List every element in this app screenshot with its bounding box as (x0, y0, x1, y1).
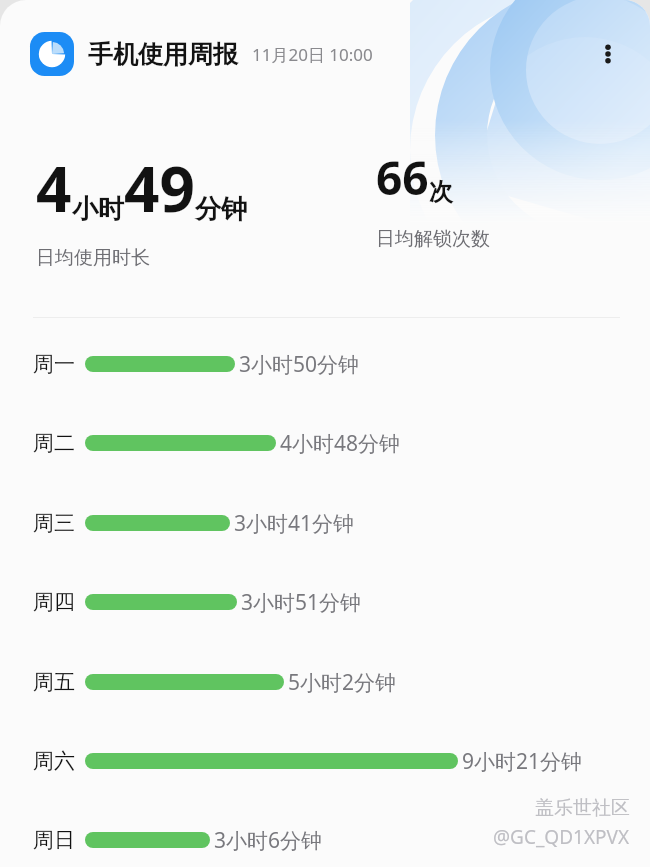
staticText: 5小时2分钟 (288, 668, 397, 697)
staticText: 3小时6分钟 (214, 826, 323, 855)
staticText: 11月20日 10:00 (252, 43, 373, 66)
button[interactable]: 周一 (0, 338, 650, 390)
staticText: 9小时21分钟 (462, 747, 583, 776)
staticText: 周六 (33, 748, 75, 774)
button[interactable]: 周日 (0, 814, 650, 866)
staticText: 4 (36, 146, 72, 230)
staticText: 次 (429, 177, 453, 207)
staticText: 周五 (33, 669, 75, 695)
staticText: 3小时41分钟 (234, 509, 355, 538)
button[interactable]: 周二 (0, 417, 650, 469)
staticText: 手机使用周报 (88, 39, 238, 70)
staticText: 日均解锁次数 (376, 227, 490, 251)
staticText: @GC_QD1XPVX (493, 824, 630, 850)
staticText: 周日 (33, 827, 75, 853)
button[interactable]: 周三 (0, 497, 650, 549)
button[interactable]: 周六 (0, 735, 650, 787)
staticText: 盖乐世社区 (535, 796, 630, 820)
staticText: 4小时48分钟 (280, 429, 401, 458)
staticText: 周四 (33, 589, 75, 615)
staticText: 周三 (33, 510, 75, 536)
button[interactable]: 周四 (0, 576, 650, 628)
staticText: 日均使用时长 (36, 246, 150, 270)
button[interactable]: More options (586, 32, 630, 76)
staticText: 3小时50分钟 (239, 350, 360, 379)
staticText: 66 (376, 146, 429, 209)
button[interactable]: 周五 (0, 656, 650, 708)
staticText: 小时 (72, 193, 124, 226)
staticText: 49 (124, 146, 195, 230)
staticText: 分钟 (195, 193, 247, 226)
staticText: 3小时51分钟 (241, 588, 362, 617)
staticText: 周一 (33, 351, 75, 377)
staticText: 周二 (33, 430, 75, 456)
